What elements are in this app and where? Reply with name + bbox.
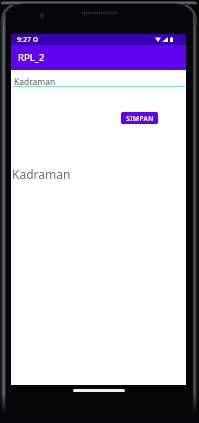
- other: Home: [73, 389, 125, 392]
- staticText: Kadraman: [14, 76, 56, 88]
- staticText: 9:27: [17, 35, 31, 45]
- staticText: SIMPAN: [126, 114, 154, 123]
- button[interactable]: Kadraman: [13, 70, 185, 88]
- button[interactable]: SIMPAN: [121, 112, 158, 124]
- staticText: Kadraman: [12, 166, 71, 182]
- button[interactable]: RPL_2: [11, 45, 186, 70]
- staticText: RPL_2: [18, 51, 45, 64]
